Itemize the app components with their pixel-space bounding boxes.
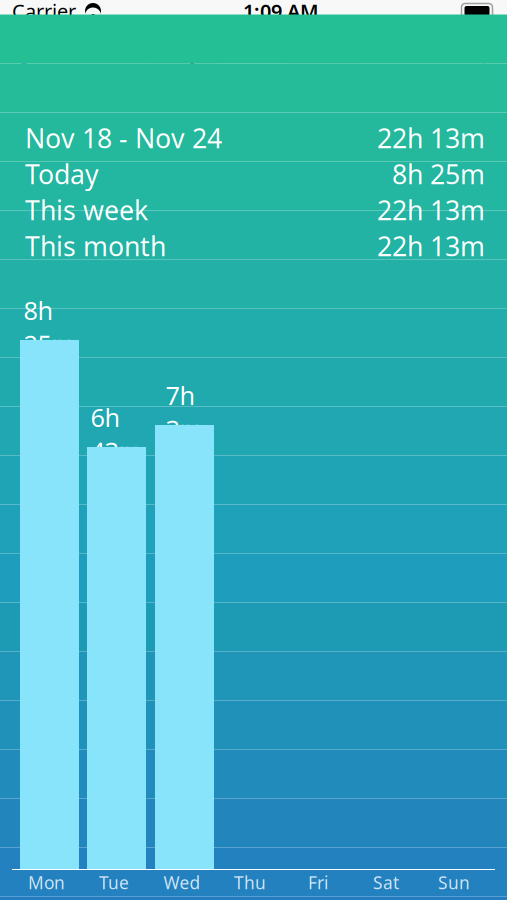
staticText: 22h 13m	[377, 120, 485, 156]
staticText: Today	[413, 32, 491, 69]
staticText: Back	[33, 32, 95, 69]
staticText: 22h 13m	[377, 228, 485, 264]
staticText: ‹	[14, 20, 28, 81]
staticText: Carrier	[12, 0, 76, 24]
button[interactable]: Nov 25	[413, 73, 507, 118]
staticText: Nov 18 - Nov 24	[25, 120, 222, 156]
staticText: This week	[25, 192, 148, 228]
staticText: 22h 13m	[377, 192, 485, 228]
staticText: Tue	[99, 871, 129, 894]
staticText: Week	[224, 36, 281, 65]
staticText: 1:09 AM	[243, 0, 319, 24]
staticText: 7h 3m	[165, 378, 203, 446]
staticText: Month	[291, 36, 358, 65]
button[interactable]: Week	[215, 35, 289, 65]
staticText: 6h 43m	[90, 400, 142, 468]
button[interactable]: Day	[147, 34, 215, 66]
button[interactable]: ‹	[0, 26, 105, 74]
button[interactable]: Nov 17	[0, 73, 92, 118]
staticText: Sun	[438, 871, 470, 894]
staticText: Sat	[373, 871, 399, 894]
staticText: 8h 25m	[392, 156, 485, 192]
button[interactable]: Today	[403, 26, 507, 74]
staticText: Today	[25, 156, 99, 192]
staticText: Mon	[28, 871, 65, 894]
staticText: Wed	[163, 871, 200, 894]
staticText: This month	[25, 228, 166, 264]
staticText: Thu	[234, 871, 266, 894]
staticText: Fri	[308, 871, 328, 894]
button[interactable]: Month	[289, 34, 359, 66]
staticText: 8h 25m	[23, 293, 75, 361]
staticText: Day	[162, 36, 201, 65]
